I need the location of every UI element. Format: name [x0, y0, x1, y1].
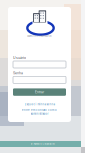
staticText: Entre em contato com o [22, 108, 57, 112]
staticText: © Adventis Corporativo [30, 143, 54, 145]
button[interactable]: Entre em contato com o [8, 108, 71, 115]
staticText: Usuário [13, 56, 26, 60]
button[interactable]: Esqueci minha senha [8, 103, 71, 106]
button[interactable]: Entrar [13, 88, 66, 96]
staticText: Entrar [35, 90, 44, 94]
staticText: Senha [13, 71, 23, 75]
staticText: Esqueci minha senha [24, 103, 54, 106]
staticText: administrador [30, 112, 48, 115]
staticText: ADVENTIS CORPORATIVO [27, 35, 52, 38]
